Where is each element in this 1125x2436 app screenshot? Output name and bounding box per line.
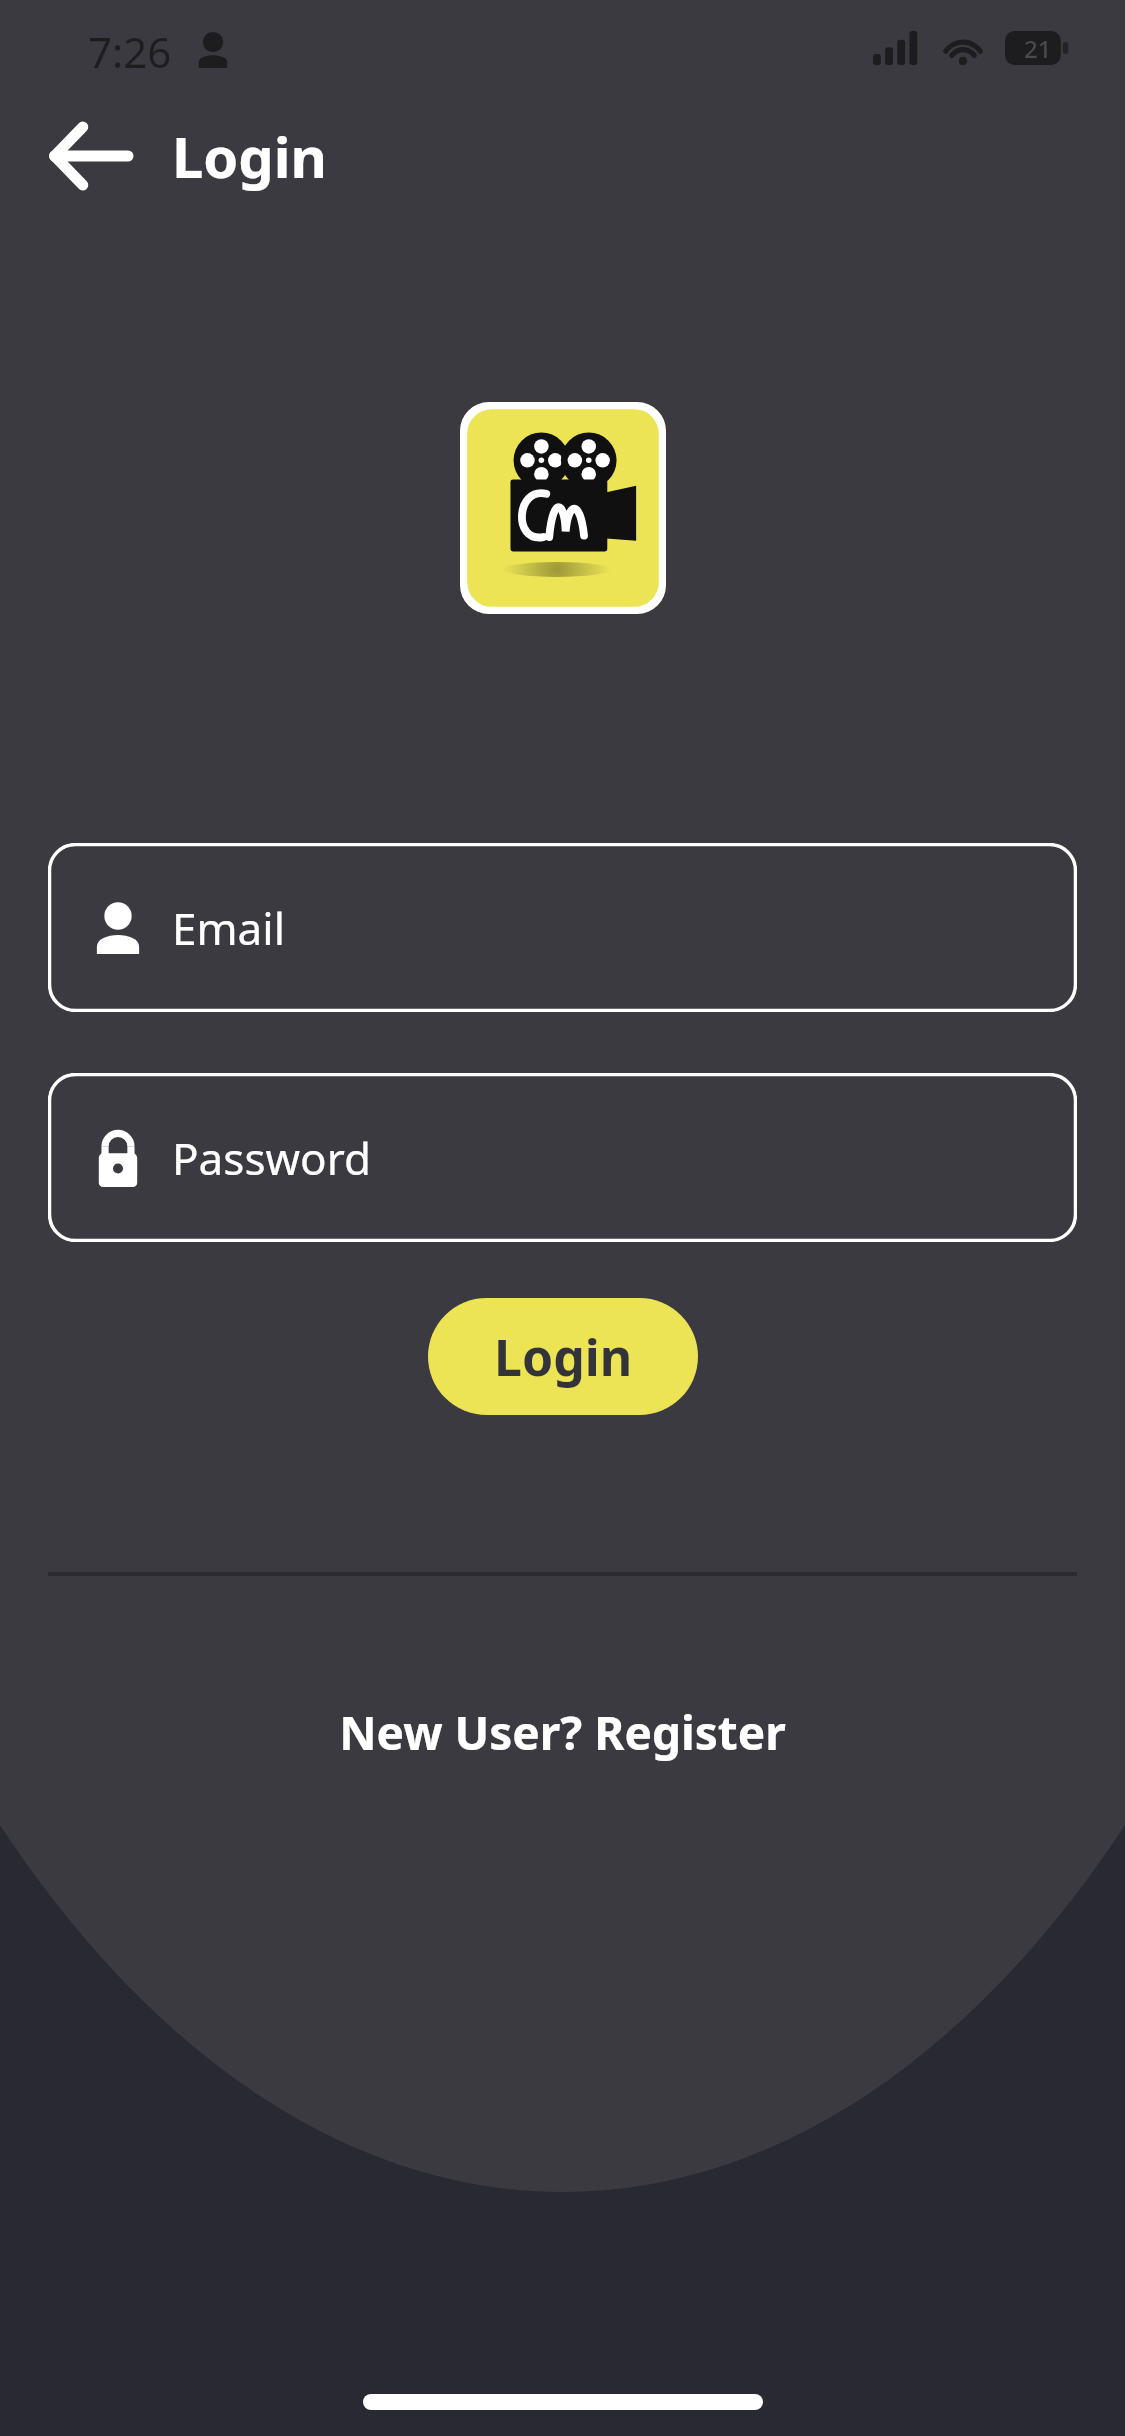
staticText: Login: [494, 1323, 633, 1391]
button[interactable]: Password: [48, 1073, 1077, 1242]
staticText: Email: [172, 898, 285, 958]
staticText: 21: [1024, 32, 1052, 65]
button[interactable]: Email: [48, 843, 1077, 1012]
staticText: 7:26: [88, 23, 172, 80]
button[interactable]: Back: [34, 101, 144, 211]
staticText: Login: [172, 118, 327, 194]
button[interactable]: New User? Register: [315, 1687, 810, 1778]
staticText: Password: [172, 1128, 372, 1188]
button[interactable]: Login: [428, 1298, 698, 1415]
staticText: New User? Register: [339, 1701, 786, 1764]
